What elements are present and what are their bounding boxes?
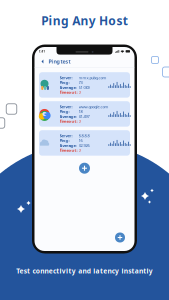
staticText: Timeout:	[59, 148, 77, 153]
staticText: mmx.pubg.com	[78, 75, 106, 80]
staticText: Server:	[59, 104, 72, 109]
button[interactable]: Server:	[39, 101, 130, 127]
staticText: Ping:	[59, 80, 69, 85]
staticText: 0	[78, 90, 80, 95]
staticText: Server:	[59, 75, 72, 80]
button[interactable]: Add host	[115, 232, 125, 242]
staticText: Timeout:	[59, 90, 77, 95]
staticText: 0	[78, 148, 80, 153]
staticText: Average:	[59, 114, 76, 119]
staticText: Ping test	[48, 58, 70, 65]
staticText: Ping:	[59, 109, 69, 114]
staticText: 0	[78, 119, 80, 124]
staticText: 61 (30)	[78, 85, 89, 90]
button[interactable]: Server:	[39, 130, 130, 156]
button[interactable]: Server:	[39, 72, 130, 98]
staticText: 73	[78, 80, 82, 85]
staticText: Ping Any Host	[41, 12, 128, 28]
staticText: 41.497	[78, 114, 89, 119]
staticText: 18	[78, 109, 82, 114]
staticText: 32.926	[78, 143, 89, 148]
staticText: Average:	[59, 85, 76, 90]
staticText: 16	[78, 138, 82, 143]
staticText: 8.8.8.8	[78, 133, 89, 138]
staticText: Server:	[59, 133, 72, 138]
staticText: www.google.com	[78, 104, 108, 109]
staticText: 9:41	[38, 50, 45, 53]
button[interactable]: Back	[39, 57, 46, 66]
staticText: Average:	[59, 143, 76, 148]
button[interactable]: Add host	[79, 163, 90, 174]
staticText: Test connectivity and latency instantly	[16, 267, 153, 275]
staticText: Timeout:	[59, 119, 77, 124]
staticText: Ping:	[59, 138, 69, 143]
